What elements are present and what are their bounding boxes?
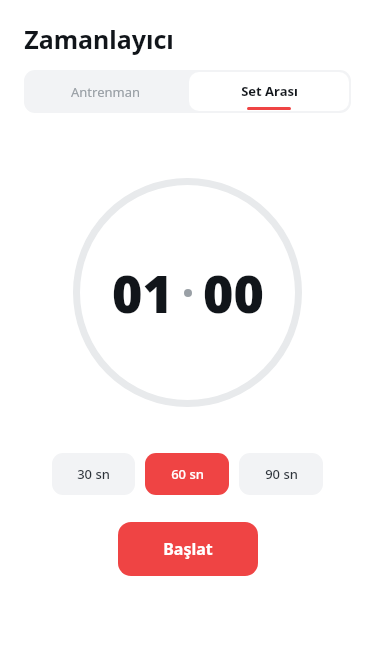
- staticText: 30 sn: [77, 465, 110, 483]
- staticText: 60 sn: [171, 465, 204, 483]
- staticText: Zamanlayıcı: [24, 22, 174, 56]
- staticText: 90 sn: [265, 465, 298, 483]
- staticText: 00: [203, 257, 264, 328]
- staticText: Set Arası: [241, 82, 298, 100]
- button[interactable]: 60 sn: [145, 453, 229, 495]
- button[interactable]: Başlat: [118, 522, 258, 576]
- button[interactable]: Set Arası: [189, 72, 349, 111]
- button[interactable]: 90 sn: [239, 453, 323, 495]
- button[interactable]: Antrenman: [24, 70, 187, 113]
- staticText: Başlat: [163, 538, 213, 560]
- staticText: Antrenman: [71, 83, 140, 101]
- button[interactable]: 30 sn: [52, 453, 135, 495]
- staticText: 01: [112, 257, 173, 328]
